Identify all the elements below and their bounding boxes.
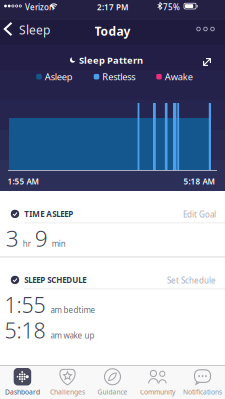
staticText: 1:55 xyxy=(4,290,45,319)
button[interactable]: 5:18 xyxy=(4,316,94,344)
staticText: Sleep Pattern xyxy=(79,54,143,66)
button[interactable]: Community xyxy=(135,365,180,399)
button[interactable]: Dashboard xyxy=(0,365,45,399)
staticText: Verizon xyxy=(25,2,54,12)
staticText: Today xyxy=(94,23,130,39)
button[interactable] xyxy=(0,13,225,45)
staticText: Sleep xyxy=(19,22,50,38)
button[interactable]: Edit Goal xyxy=(156,209,216,220)
staticText: 1:55 AM xyxy=(7,176,38,187)
staticText: Restless xyxy=(102,70,135,83)
staticText: SLEEP SCHEDULE xyxy=(24,275,86,285)
staticText: 9 xyxy=(35,223,48,253)
staticText: am bedtime xyxy=(50,304,95,315)
staticText: Asleep xyxy=(45,70,73,83)
staticText: 5:18 AM xyxy=(183,176,214,187)
button[interactable]: Notifications xyxy=(180,365,225,399)
staticText: 75% xyxy=(163,2,180,12)
staticText: min xyxy=(52,238,66,249)
button[interactable] xyxy=(200,55,214,69)
staticText: Notifications xyxy=(183,388,222,396)
staticText: Dashboard xyxy=(5,388,40,396)
staticText: Guidance xyxy=(97,388,127,396)
staticText: Challenges xyxy=(50,388,85,396)
button[interactable]: 1:55 xyxy=(4,290,95,319)
staticText: 5:18 xyxy=(4,316,45,344)
staticText: hr xyxy=(23,238,31,249)
staticText: Set Schedule xyxy=(167,275,216,286)
staticText: 2:17 PM xyxy=(97,2,128,12)
staticText: TIME ASLEEP xyxy=(24,209,73,219)
button[interactable]: Guidance xyxy=(90,365,135,399)
staticText: 3 xyxy=(6,223,19,253)
button[interactable]: Challenges xyxy=(45,365,90,399)
button[interactable]: Sleep xyxy=(0,13,50,45)
staticText: Edit Goal xyxy=(183,209,216,220)
button[interactable]: Set Schedule xyxy=(146,275,216,286)
staticText: Awake xyxy=(165,70,193,83)
staticText: am wake up xyxy=(50,330,94,341)
staticText: Community xyxy=(140,388,175,396)
